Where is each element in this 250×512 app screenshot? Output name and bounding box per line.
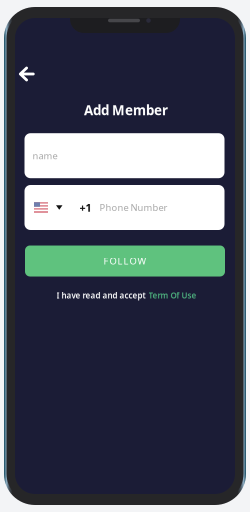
button[interactable]: Term Of Use	[148, 290, 196, 301]
button[interactable]: Back	[12, 59, 42, 88]
staticText: Term Of Use	[148, 290, 196, 301]
button[interactable]: F O L L O W	[25, 245, 225, 276]
staticText: name	[32, 149, 57, 162]
staticText: F O L L O W	[103, 255, 146, 267]
staticText: +1	[79, 200, 91, 215]
button[interactable]: +1	[24, 185, 224, 230]
staticText: I have read and accept	[56, 290, 145, 301]
button[interactable]: name	[24, 133, 224, 178]
staticText: Add Member	[84, 101, 168, 119]
staticText: Phone Number	[99, 201, 167, 214]
